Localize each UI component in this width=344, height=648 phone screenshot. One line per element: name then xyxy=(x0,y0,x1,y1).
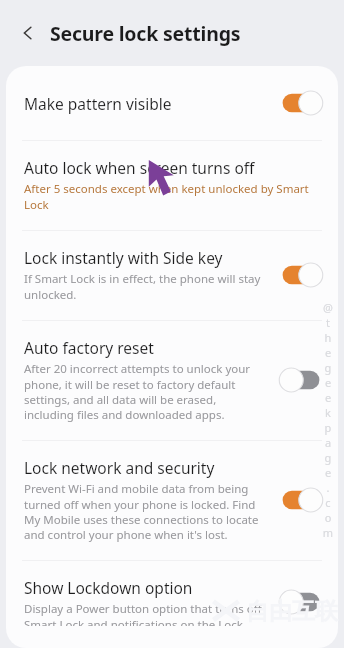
button[interactable]: Toggle on xyxy=(278,88,324,118)
staticText: Auto lock when screen turns off xyxy=(24,157,255,178)
staticText: c xyxy=(320,495,336,510)
button[interactable]: Back xyxy=(14,19,42,47)
staticText: o xyxy=(320,510,336,525)
staticText: e xyxy=(320,345,336,360)
staticText: t xyxy=(320,315,336,330)
button[interactable]: Toggle off xyxy=(278,587,324,617)
staticText: a xyxy=(320,435,336,450)
staticText: e xyxy=(320,465,336,480)
staticText: k xyxy=(320,405,336,420)
staticText: m xyxy=(320,525,336,540)
staticText: e xyxy=(320,375,336,390)
staticText: After 20 incorrect attempts to unlock yo… xyxy=(24,361,268,422)
button[interactable]: Lock network and security xyxy=(6,441,338,560)
staticText: After 5 seconds except when kept unlocke… xyxy=(24,181,310,212)
staticText: Lock network and security xyxy=(24,457,215,478)
staticText: p xyxy=(320,420,336,435)
staticText: . xyxy=(320,480,336,495)
staticText: Make pattern visible xyxy=(24,93,172,114)
staticText: Prevent Wi-Fi and mobile data from being… xyxy=(24,481,268,542)
button[interactable]: Toggle on xyxy=(278,260,324,290)
staticText: h xyxy=(320,330,336,345)
button[interactable]: Lock instantly with Side key xyxy=(6,231,338,320)
staticText: 自由互联 xyxy=(246,597,338,626)
button[interactable]: Auto lock when screen turns off xyxy=(6,141,338,230)
button[interactable]: Show Lockdown option xyxy=(6,561,338,648)
staticText: e xyxy=(320,390,336,405)
staticText: g xyxy=(320,450,336,465)
button[interactable]: Toggle on xyxy=(278,485,324,515)
staticText: Display a Power button option that turns… xyxy=(24,601,268,626)
staticText: Secure lock settings xyxy=(50,20,241,47)
button[interactable]: Auto factory reset xyxy=(6,321,338,440)
staticText: @ xyxy=(320,300,336,315)
staticText: Auto factory reset xyxy=(24,337,154,358)
staticText: If Smart Lock is in effect, the phone wi… xyxy=(24,271,268,302)
staticText: Show Lockdown option xyxy=(24,577,193,598)
button[interactable]: Toggle off xyxy=(278,365,324,395)
staticText: g xyxy=(320,360,336,375)
button[interactable]: Make pattern visible xyxy=(6,66,338,140)
staticText: Lock instantly with Side key xyxy=(24,247,223,268)
